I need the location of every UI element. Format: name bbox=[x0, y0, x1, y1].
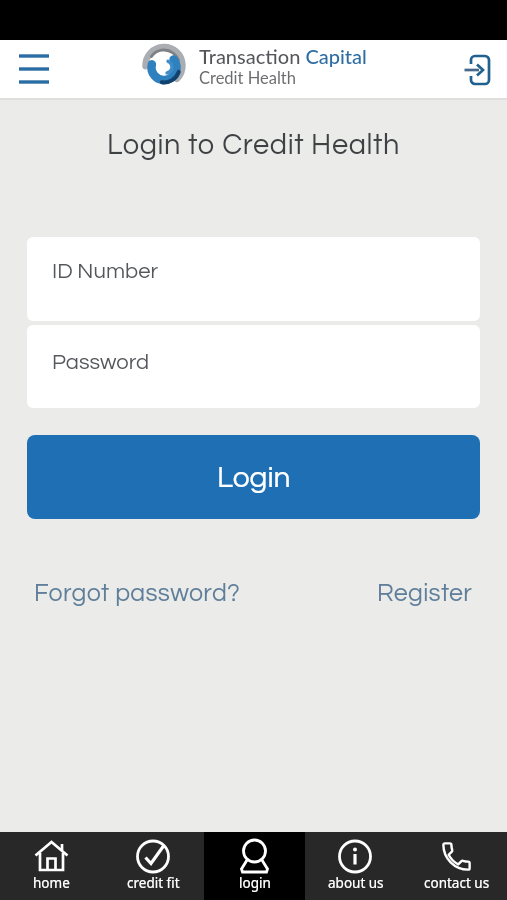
staticText: Login bbox=[217, 462, 291, 493]
button[interactable]: Forgot password? bbox=[34, 580, 241, 606]
button[interactable]: Password bbox=[27, 325, 480, 408]
button[interactable]: about us bbox=[305, 832, 406, 900]
staticText: home bbox=[33, 874, 70, 892]
staticText: Credit Health bbox=[199, 68, 296, 88]
button[interactable]: login bbox=[204, 832, 305, 900]
staticText: Login to Credit Health bbox=[107, 130, 401, 160]
button[interactable]: Register bbox=[377, 580, 473, 606]
button[interactable] bbox=[455, 49, 495, 89]
staticText: login bbox=[239, 874, 271, 892]
button[interactable]: home bbox=[0, 832, 102, 900]
staticText: Transaction Capital bbox=[199, 44, 367, 68]
staticText: ID Number bbox=[52, 260, 158, 283]
button[interactable] bbox=[8, 45, 56, 93]
staticText: Password bbox=[52, 351, 150, 374]
staticText: credit fit bbox=[127, 874, 180, 892]
button[interactable]: Login bbox=[27, 435, 480, 519]
staticText: about us bbox=[328, 874, 384, 892]
button[interactable]: ID Number bbox=[27, 237, 480, 321]
button[interactable]: contact us bbox=[406, 832, 507, 900]
button[interactable]: credit fit bbox=[102, 832, 204, 900]
staticText: contact us bbox=[424, 874, 490, 892]
